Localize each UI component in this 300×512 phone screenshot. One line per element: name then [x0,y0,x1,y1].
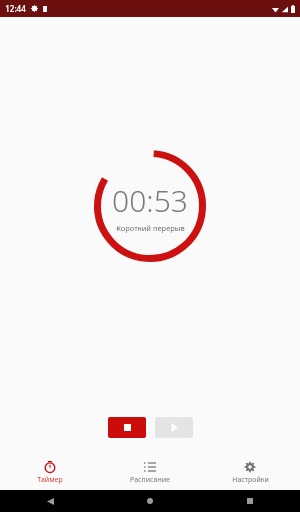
button[interactable]: Home [100,490,200,512]
button[interactable]: Recents [200,490,300,512]
staticText: Короткий перерыв [116,223,185,233]
button[interactable]: Start [155,417,193,438]
button[interactable]: Расписание [100,455,200,490]
staticText: Настройки [232,475,269,485]
staticText: Таймер [37,475,63,485]
button[interactable]: Stop [108,417,146,438]
button[interactable]: Таймер [0,455,100,490]
staticText: 00:53 [112,180,188,221]
staticText: 12:44 [5,3,26,14]
staticText: Расписание [130,475,170,485]
button[interactable]: Back [0,490,100,512]
button[interactable]: Настройки [200,455,300,490]
